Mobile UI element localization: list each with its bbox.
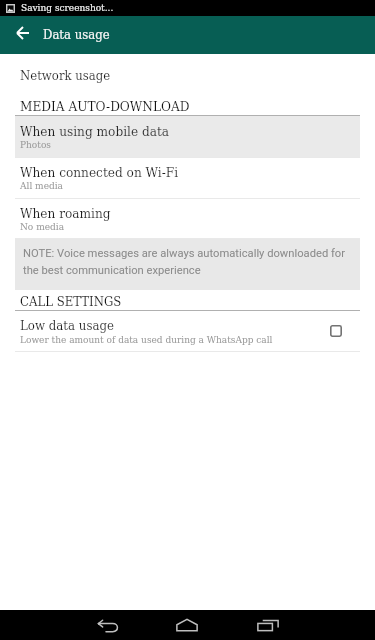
staticText: Data usage [43,27,110,42]
button[interactable]: When connected on Wi-Fi [15,157,360,198]
button[interactable]: Low data usage [0,311,375,351]
staticText: When using mobile data [20,123,170,139]
button[interactable]: Home [163,614,211,636]
staticText: CALL SETTINGS [20,294,122,309]
button[interactable]: Back [5,14,40,52]
other: Low data usage checkbox [330,325,342,337]
staticText: Network usage [20,68,111,83]
button[interactable]: Network usage [0,61,375,89]
staticText: Low data usage [20,318,114,333]
staticText: Photos [20,139,51,151]
button[interactable]: When roaming [15,198,360,239]
button[interactable]: Back [84,615,132,637]
staticText: NOTE: Voice messages are always automati… [23,247,353,276]
staticText: No media [20,221,64,233]
button[interactable]: When using mobile data [15,116,360,157]
staticText: Saving screenshot... [21,2,114,14]
staticText: When connected on Wi-Fi [20,164,179,180]
staticText: When roaming [20,205,111,221]
staticText: Lower the amount of data used during a W… [20,334,273,346]
staticText: MEDIA AUTO-DOWNLOAD [20,98,190,114]
staticText: All media [20,180,63,192]
button[interactable]: Recent apps [244,614,292,636]
